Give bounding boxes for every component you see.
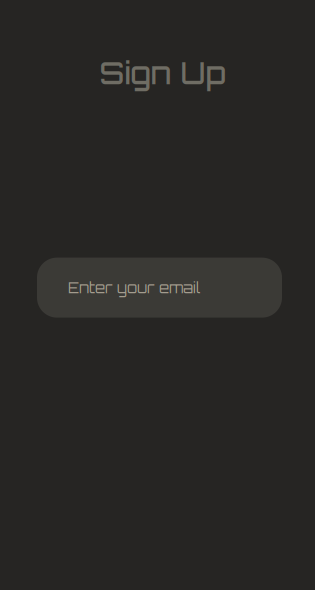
staticText: Enter your email — [68, 278, 200, 297]
staticText: Sign Up — [99, 54, 225, 92]
button[interactable]: Enter your email — [37, 258, 282, 318]
